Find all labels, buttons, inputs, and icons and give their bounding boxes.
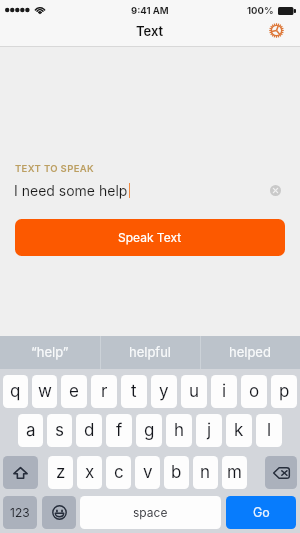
button[interactable]: v	[135, 456, 160, 489]
button[interactable]: i	[211, 375, 237, 408]
button[interactable]: y	[151, 375, 177, 408]
staticText: Text	[136, 23, 164, 39]
staticText: TEXT TO SPEAK	[15, 163, 95, 174]
staticText: y	[159, 381, 169, 402]
staticText: g	[144, 420, 155, 441]
button[interactable]: g	[136, 414, 162, 447]
button[interactable]: b	[164, 456, 189, 489]
staticText: u	[189, 381, 200, 402]
button[interactable]: “help”	[0, 336, 100, 369]
staticText: 9:41 AM	[131, 5, 169, 16]
button[interactable]: Settings	[265, 19, 287, 41]
staticText: “help”	[31, 344, 69, 360]
staticText: l	[267, 420, 272, 441]
button[interactable]: a	[18, 414, 43, 447]
button[interactable]: p	[271, 375, 297, 408]
button[interactable]: helped	[200, 336, 300, 369]
staticText: d	[84, 420, 95, 441]
staticText: b	[171, 462, 182, 483]
button[interactable]: o	[241, 375, 267, 408]
staticText: s	[55, 420, 64, 441]
staticText: q	[10, 381, 21, 402]
button[interactable]: Go	[226, 496, 296, 529]
button[interactable]: l	[256, 414, 282, 447]
button[interactable]: 123	[3, 496, 37, 529]
button[interactable]: e	[61, 375, 87, 408]
staticText: a	[26, 420, 36, 441]
button[interactable]: Speak Text	[15, 219, 285, 256]
button[interactable]: u	[181, 375, 207, 408]
button[interactable]: Clear text	[270, 185, 281, 196]
staticText: n	[200, 462, 211, 483]
button[interactable]: x	[77, 456, 102, 489]
staticText: I need some help	[14, 182, 128, 199]
button[interactable]: c	[106, 456, 131, 489]
staticText: o	[249, 381, 260, 402]
staticText: 123	[10, 505, 30, 520]
button[interactable]: f	[106, 414, 132, 447]
staticText: i	[222, 381, 227, 402]
button[interactable]: helpful	[100, 336, 200, 369]
staticText: p	[279, 381, 290, 402]
staticText: k	[234, 420, 244, 441]
staticText: x	[85, 462, 95, 483]
staticText: m	[227, 462, 242, 483]
staticText: t	[131, 381, 137, 402]
button[interactable]: t	[121, 375, 147, 408]
staticText: Go	[253, 505, 270, 520]
staticText: Speak Text	[118, 230, 182, 245]
button[interactable]: j	[196, 414, 222, 447]
button[interactable]: Backspace	[265, 456, 297, 489]
button[interactable]: d	[76, 414, 102, 447]
staticText: c	[114, 462, 124, 483]
button[interactable]: w	[32, 375, 57, 408]
staticText: f	[116, 420, 123, 441]
staticText: z	[56, 462, 66, 483]
staticText: w	[38, 381, 52, 402]
button[interactable]: q	[3, 375, 28, 408]
button[interactable]: m	[222, 456, 247, 489]
button[interactable]: z	[48, 456, 73, 489]
button[interactable]: r	[91, 375, 117, 408]
button[interactable]: n	[193, 456, 218, 489]
button[interactable]: space	[80, 496, 221, 529]
button[interactable]: k	[226, 414, 252, 447]
staticText: h	[174, 420, 185, 441]
staticText: v	[143, 462, 153, 483]
button[interactable]: Shift	[3, 456, 38, 489]
staticText: 100%	[247, 5, 274, 16]
staticText: helpful	[129, 344, 172, 360]
staticText: r	[101, 381, 108, 402]
staticText: helped	[229, 344, 271, 360]
button[interactable]: Emoji	[42, 496, 76, 529]
staticText: space	[133, 505, 168, 520]
button[interactable]: s	[47, 414, 72, 447]
staticText: j	[207, 420, 212, 441]
button[interactable]: h	[166, 414, 192, 447]
staticText: e	[69, 381, 79, 402]
